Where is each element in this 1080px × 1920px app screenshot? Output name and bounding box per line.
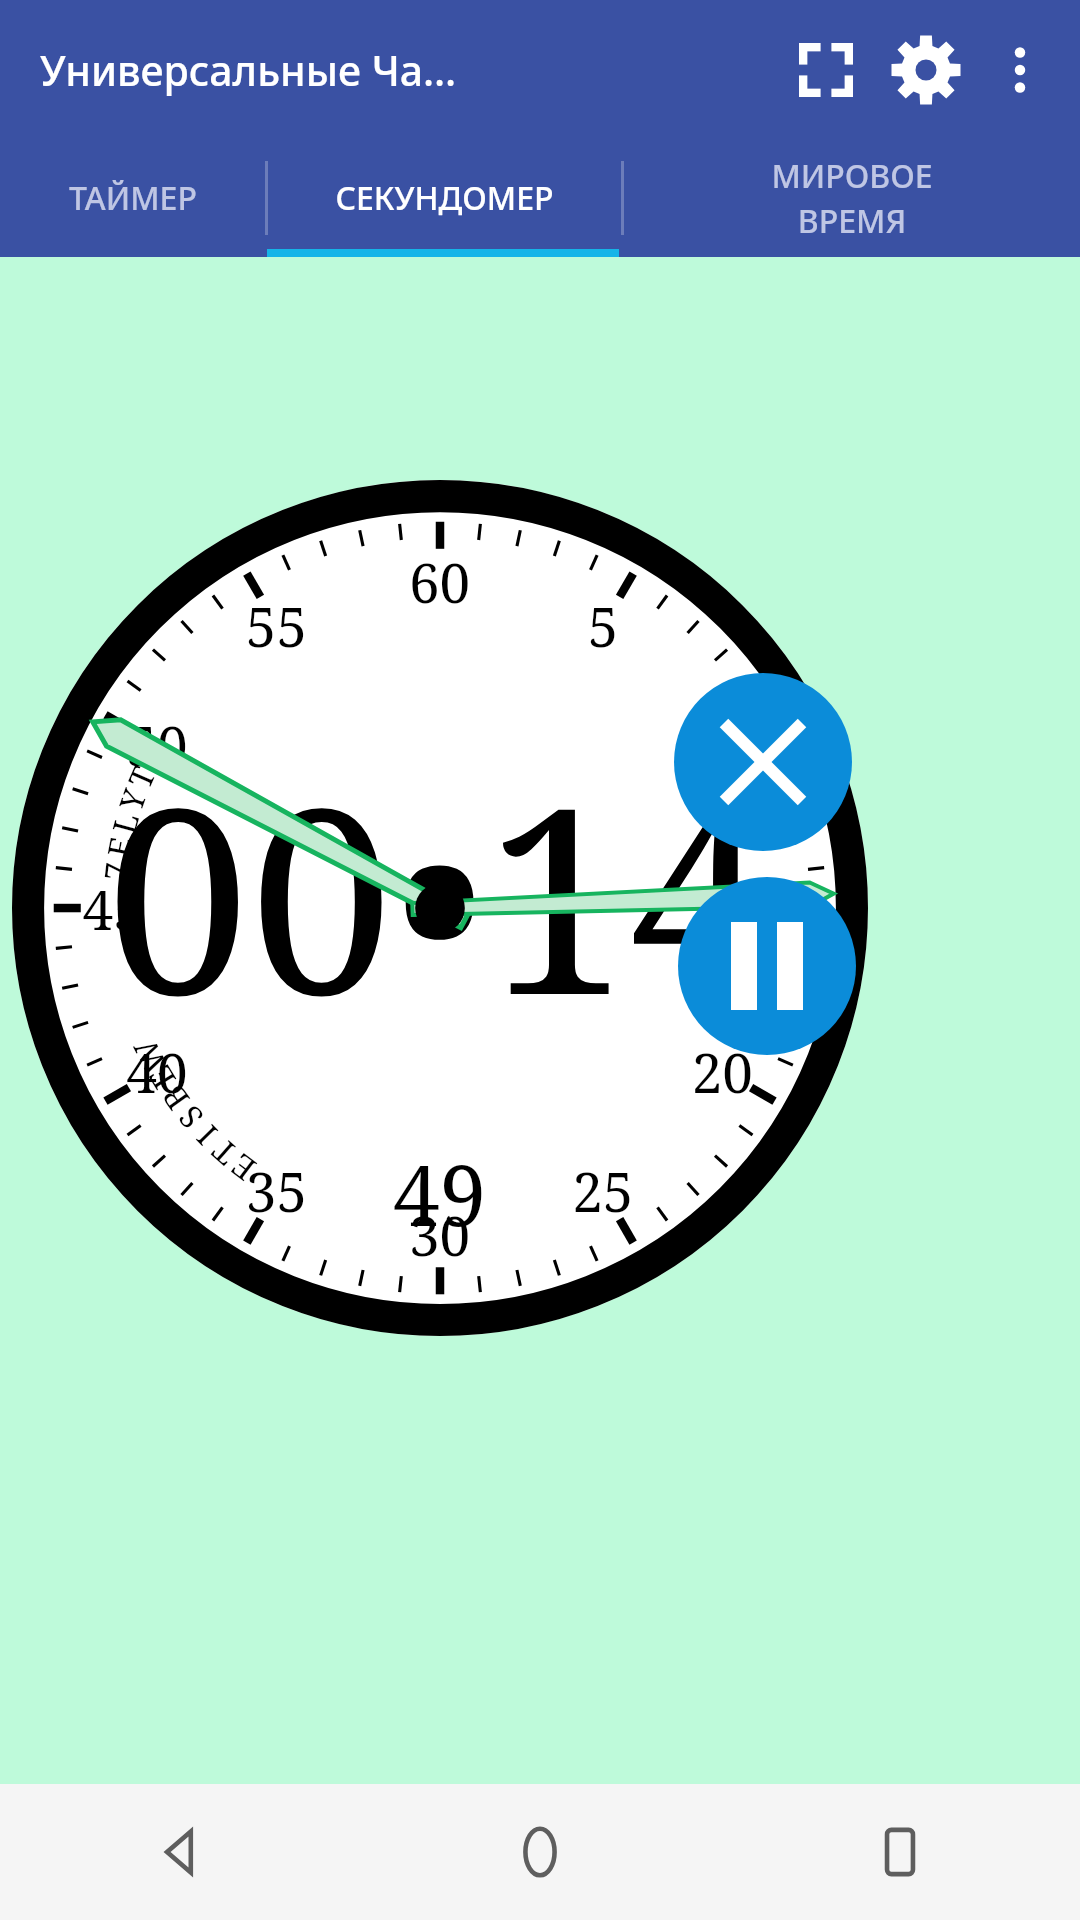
button[interactable]: Back [0, 1784, 360, 1920]
staticText: МИРОВОЕ ВРЕМЯ [771, 154, 933, 242]
button[interactable]: МИРОВОЕ ВРЕМЯ [624, 139, 1080, 257]
button[interactable]: Settings [876, 20, 976, 120]
staticText: Универсальные Ча… [40, 42, 457, 98]
button[interactable]: ТАЙМЕР [0, 139, 265, 257]
button[interactable]: Home [360, 1784, 720, 1920]
button[interactable]: Pause [678, 877, 856, 1055]
button[interactable]: Stop [674, 673, 852, 851]
button[interactable]: СЕКУНДОМЕР [268, 139, 621, 257]
button[interactable]: Fullscreen [776, 20, 876, 120]
button[interactable]: More options [976, 26, 1064, 114]
staticText: СЕКУНДОМЕР [335, 176, 554, 220]
button[interactable]: Recent apps [720, 1784, 1080, 1920]
staticText: ТАЙМЕР [69, 176, 197, 220]
